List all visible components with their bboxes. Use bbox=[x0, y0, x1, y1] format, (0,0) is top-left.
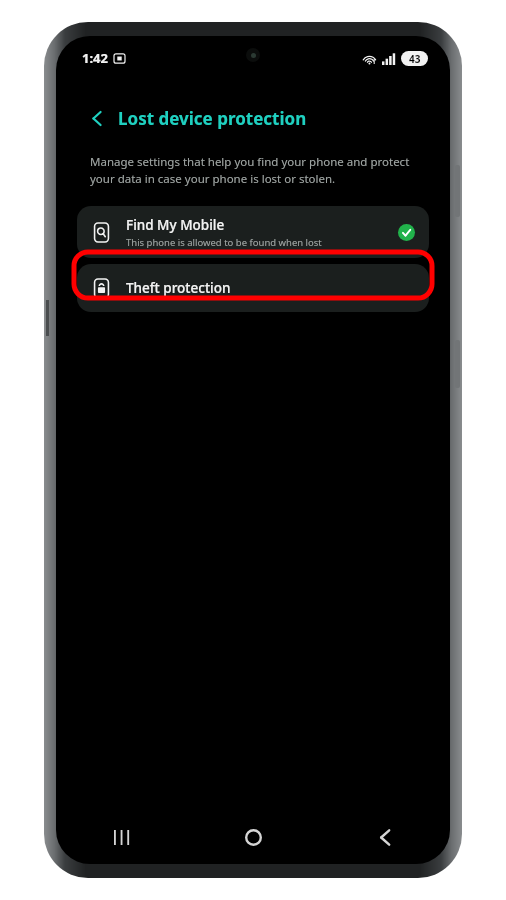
staticText: Theft protection bbox=[126, 279, 231, 297]
button[interactable]: Home bbox=[188, 816, 319, 858]
staticText: Find My Mobile bbox=[126, 216, 225, 234]
staticText: 43 bbox=[409, 52, 421, 66]
staticText: This phone is allowed to be found when l… bbox=[126, 236, 322, 249]
staticText: 1:42 bbox=[82, 49, 108, 67]
button[interactable]: Recent apps bbox=[56, 816, 188, 858]
button[interactable]: Back bbox=[80, 101, 114, 135]
staticText: Manage settings that help you find your … bbox=[90, 154, 422, 186]
button[interactable]: Theft protection bbox=[77, 264, 429, 312]
button[interactable]: Back bbox=[319, 816, 450, 858]
staticText: Lost device protection bbox=[118, 107, 307, 130]
button[interactable]: Find My Mobile bbox=[77, 206, 429, 258]
